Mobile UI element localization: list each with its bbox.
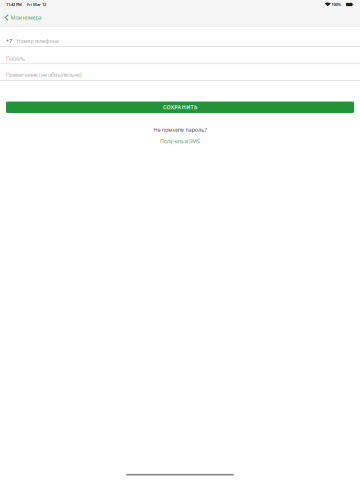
staticText: 11:42 PM (6, 2, 22, 7)
staticText: Номер телефона (17, 37, 59, 44)
staticText: Fri Mar 12 (27, 2, 46, 7)
staticText: Мои номера (11, 14, 42, 21)
button[interactable]: СОХРАНИТЬ (6, 101, 354, 113)
staticText: Не помните пароль? (153, 126, 207, 133)
staticText: СОХРАНИТЬ (163, 104, 197, 111)
staticText: 100% (331, 2, 341, 7)
button[interactable]: Получить в SMS (160, 138, 200, 145)
button[interactable]: Мои номера (0, 9, 48, 26)
staticText: Получить в SMS (160, 138, 200, 145)
staticText: Примечание (не обязательно) (6, 71, 82, 78)
staticText: Пароль (6, 55, 25, 62)
staticText: +7 (6, 37, 12, 44)
